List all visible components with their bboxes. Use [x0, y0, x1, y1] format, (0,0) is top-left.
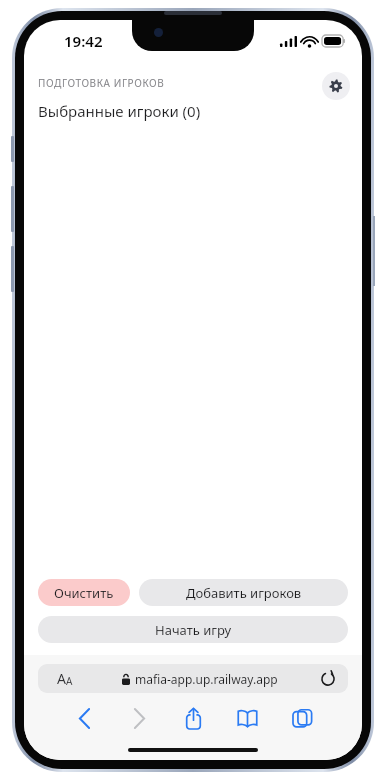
staticText: Начать игру [155, 621, 232, 639]
button[interactable]: Очистить [38, 579, 130, 606]
button[interactable]: Forward [119, 703, 159, 733]
button[interactable]: Reload [308, 664, 348, 693]
button[interactable]: Settings [322, 72, 350, 100]
button[interactable]: Начать игру [38, 616, 348, 643]
button[interactable]: Добавить игроков [139, 579, 348, 606]
button[interactable]: A [38, 664, 348, 693]
staticText: mafia-app.up.railway.app [135, 671, 278, 687]
staticText: 19:42 [64, 31, 103, 51]
staticText: ПОДГОТОВКА ИГРОКОВ [38, 76, 165, 90]
button[interactable]: Share [173, 703, 213, 733]
staticText: Добавить игроков [186, 584, 302, 602]
staticText: Очистить [54, 584, 114, 602]
button[interactable]: Tabs [282, 703, 322, 733]
button[interactable]: Back [64, 703, 104, 733]
staticText: A [66, 674, 73, 688]
staticText: Выбранные игроки (0) [38, 101, 201, 121]
button[interactable]: Bookmarks [227, 703, 267, 733]
staticText: A [57, 669, 66, 688]
